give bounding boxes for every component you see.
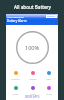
staticText: INSTALL	[47, 15, 56, 18]
staticText: Tools	[46, 92, 52, 95]
staticText: 100%	[25, 44, 40, 51]
staticText: Info	[46, 77, 51, 80]
staticText: Charge	[11, 77, 20, 80]
button[interactable]: Free download	[6, 14, 58, 25]
button[interactable]: Info	[41, 71, 56, 80]
staticText: All about Battery	[14, 4, 51, 10]
staticText: MORE APPS	[25, 95, 40, 99]
button[interactable]: Apps	[25, 86, 40, 95]
button[interactable]: Tools	[41, 86, 56, 95]
staticText: Health	[29, 77, 37, 80]
button[interactable]: Saver	[8, 86, 23, 95]
staticText: Battery Alarm	[7, 19, 27, 23]
staticText: Free download	[7, 15, 24, 18]
staticText: Apps	[30, 92, 36, 95]
staticText: Saver	[12, 92, 19, 95]
button[interactable]: Health	[25, 71, 40, 80]
button[interactable]: Charge	[8, 71, 23, 80]
